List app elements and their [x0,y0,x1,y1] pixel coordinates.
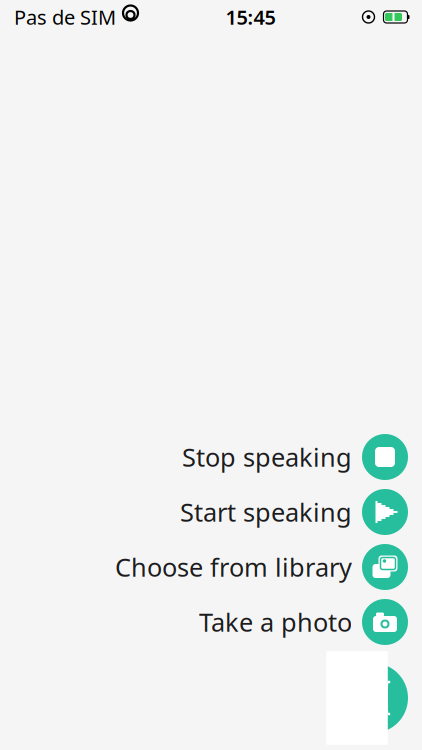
staticText: Take a photo [199,605,352,639]
button[interactable]: Stop speaking [0,434,422,480]
button[interactable]: Start speaking [0,489,422,535]
staticText: Pas de SIM [14,4,116,30]
staticText: 15:45 [225,4,275,30]
staticText: Stop speaking [182,440,352,474]
button[interactable]: Take a photo [0,599,422,645]
button[interactable]: Choose from library [0,544,422,590]
button[interactable]: Close menu [338,663,408,733]
staticText: Start speaking [180,495,352,529]
staticText: Choose from library [115,550,352,584]
